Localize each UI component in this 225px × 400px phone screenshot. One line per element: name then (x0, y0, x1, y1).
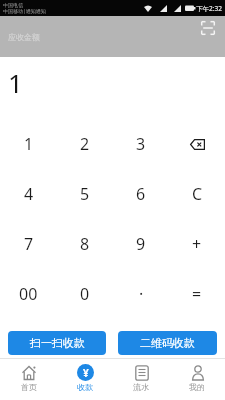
button[interactable]: ¥ (57, 359, 113, 400)
button[interactable]: 3 (113, 119, 169, 169)
button[interactable]: 5 (57, 169, 113, 219)
button[interactable]: 扫一扫收款 (8, 331, 106, 355)
staticText: 6 (136, 183, 146, 205)
staticText: · (139, 283, 144, 305)
button[interactable]: = (169, 269, 225, 319)
button[interactable]: 首页 (0, 359, 57, 400)
staticText: 中国移动|通知通知 (3, 8, 46, 15)
button[interactable]: 2 (57, 119, 113, 169)
staticText: 应收金额 (8, 32, 40, 42)
button[interactable]: 9 (113, 219, 169, 269)
staticText: 00 (19, 283, 38, 305)
button[interactable]: 流水 (113, 359, 169, 400)
button[interactable]: 1 (0, 119, 57, 169)
staticText: = (192, 283, 202, 305)
button[interactable]: 4 (0, 169, 57, 219)
staticText: 1 (8, 65, 23, 100)
button[interactable]: 8 (57, 219, 113, 269)
staticText: 我的 (189, 382, 205, 392)
staticText: C (192, 183, 203, 205)
button[interactable]: 0 (57, 269, 113, 319)
button[interactable] (201, 21, 215, 35)
button[interactable]: 7 (0, 219, 57, 269)
staticText: + (192, 233, 202, 255)
staticText: 扫一扫收款 (30, 336, 85, 350)
staticText: 4 (24, 183, 34, 205)
button[interactable]: 6 (113, 169, 169, 219)
staticText: 9 (136, 233, 146, 255)
staticText: 5 (80, 183, 90, 205)
staticText: 流水 (133, 382, 149, 392)
button[interactable]: 00 (0, 269, 57, 319)
staticText: 1 (24, 133, 34, 155)
button[interactable] (169, 119, 225, 169)
staticText: 0 (80, 283, 90, 305)
staticText: 2 (80, 133, 90, 155)
staticText: 7 (24, 233, 34, 255)
button[interactable]: 我的 (169, 359, 225, 400)
staticText: 首页 (21, 382, 37, 392)
staticText: 下午2:32 (196, 4, 222, 13)
button[interactable]: · (113, 269, 169, 319)
staticText: ¥ (83, 366, 89, 380)
button[interactable]: + (169, 219, 225, 269)
button[interactable]: 二维码收款 (118, 331, 217, 355)
staticText: 3 (136, 133, 146, 155)
staticText: 中国电信 (3, 2, 23, 8)
staticText: 8 (80, 233, 90, 255)
button[interactable]: C (169, 169, 225, 219)
staticText: 二维码收款 (140, 336, 195, 350)
staticText: 收款 (77, 382, 93, 392)
